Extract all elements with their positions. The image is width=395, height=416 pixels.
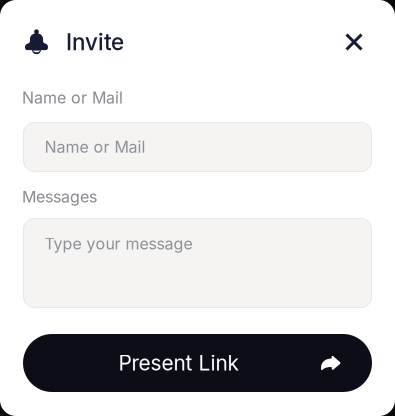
staticText: Name or Mail xyxy=(44,137,145,157)
staticText: Name or Mail xyxy=(22,88,123,107)
staticText: Invite xyxy=(66,28,124,56)
staticText: Type your message xyxy=(44,234,192,253)
button[interactable]: Close xyxy=(334,22,374,62)
staticText: Messages xyxy=(22,187,97,206)
button[interactable]: Present Link xyxy=(23,334,372,392)
staticText: Present Link xyxy=(118,350,238,376)
